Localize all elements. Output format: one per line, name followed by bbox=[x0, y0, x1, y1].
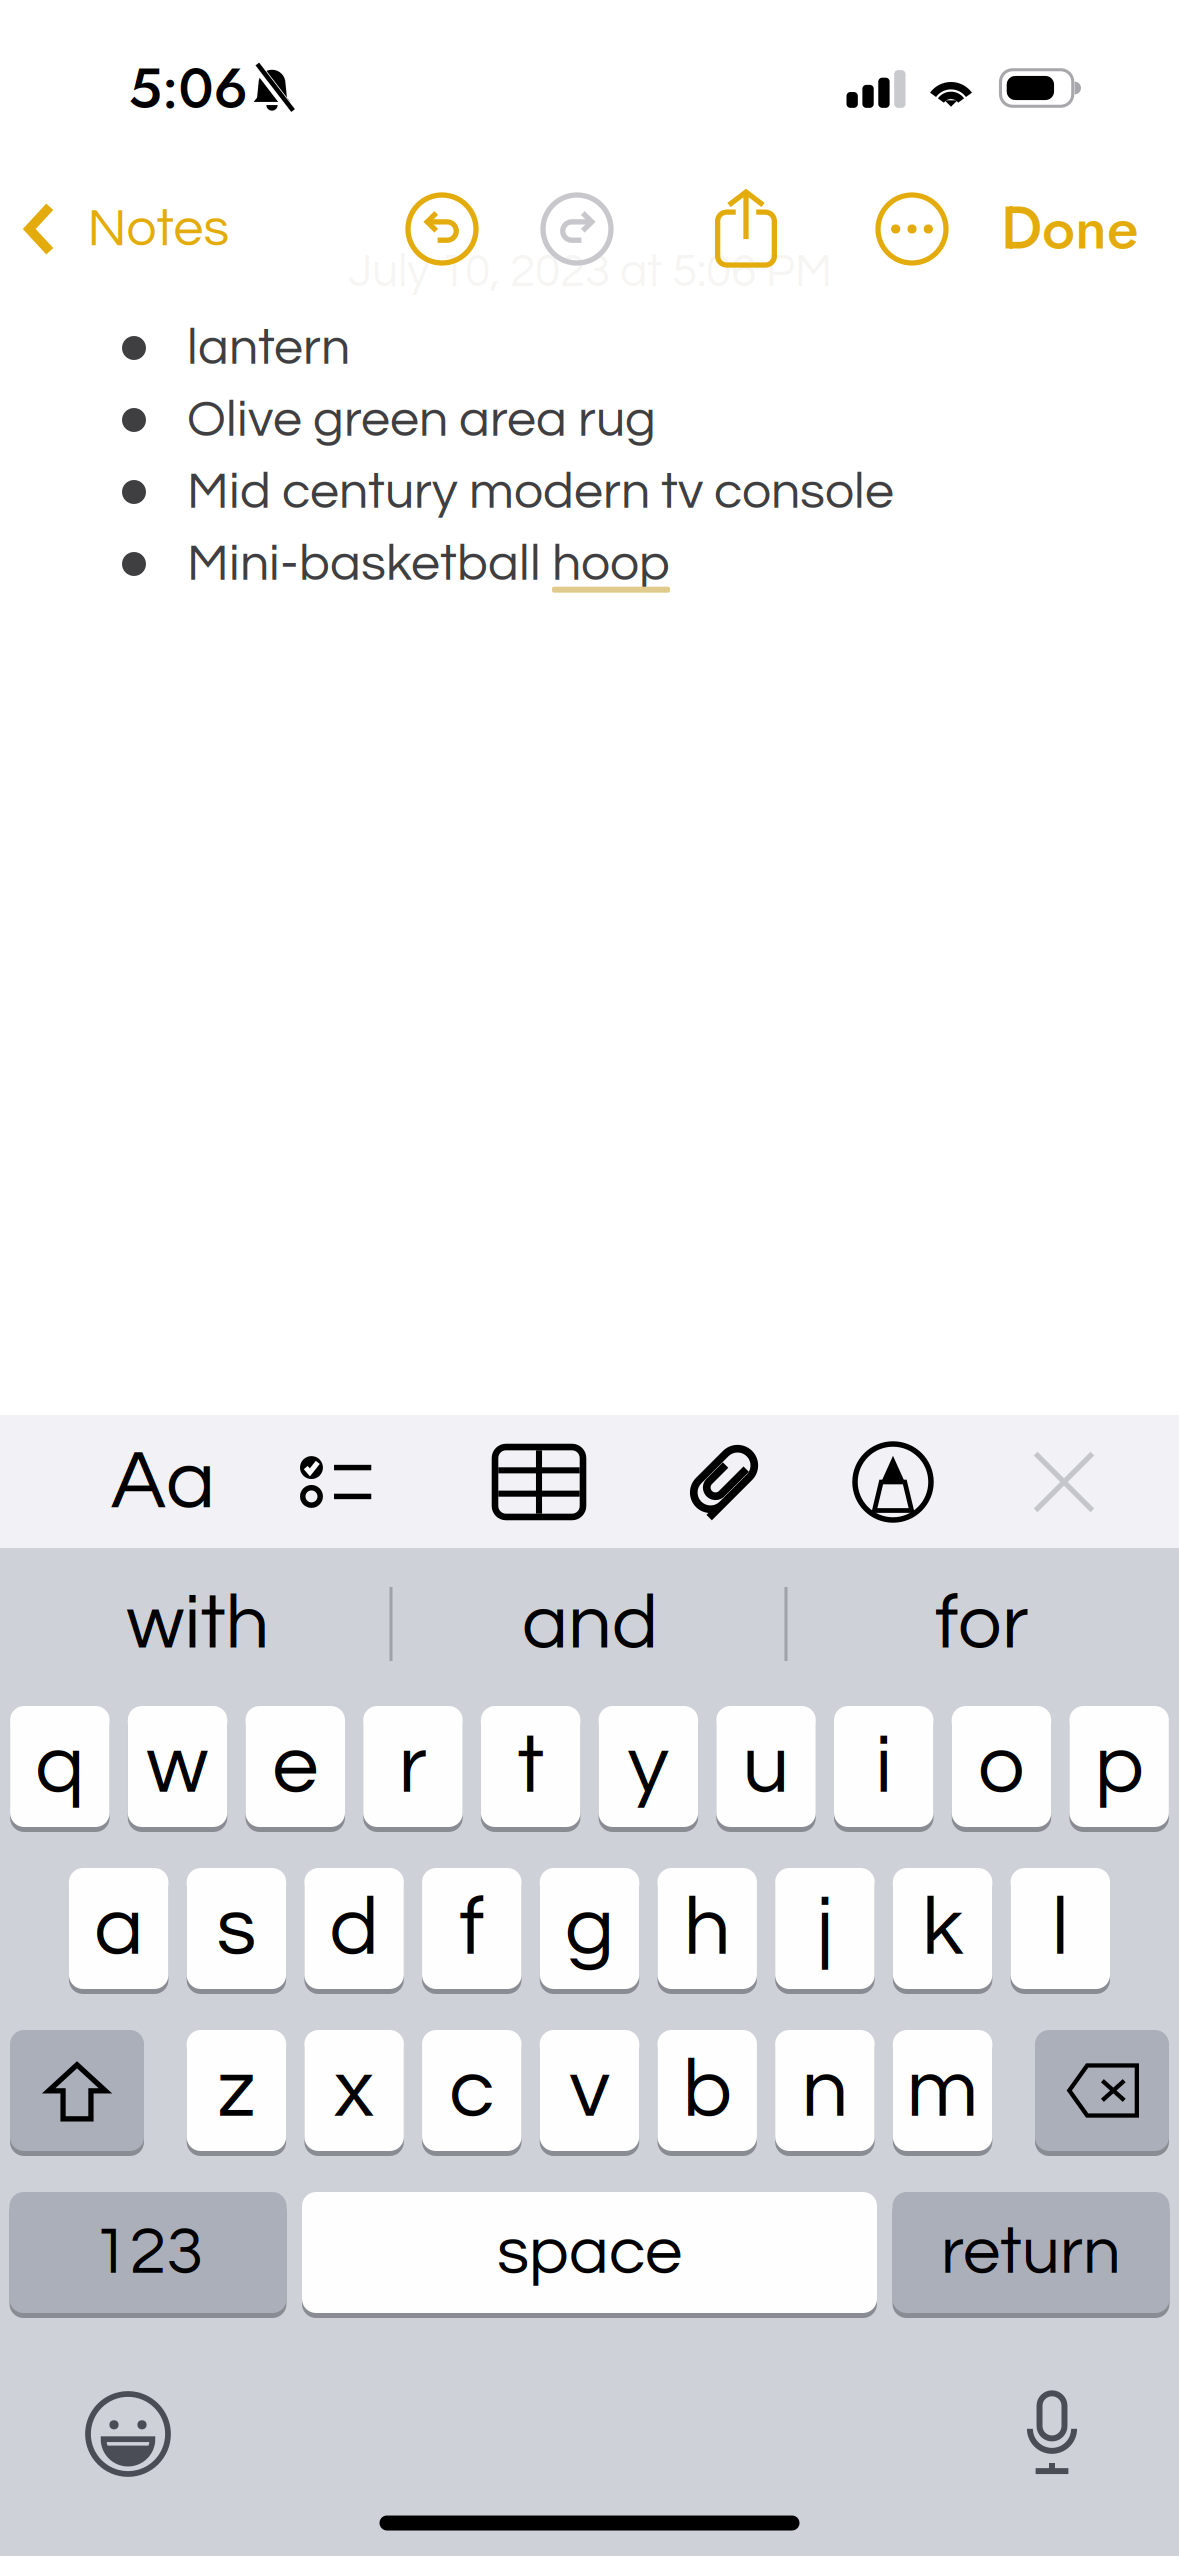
button[interactable]: Attach file bbox=[646, 1415, 796, 1548]
button[interactable]: z bbox=[187, 2025, 286, 2156]
staticText: lantern bbox=[187, 321, 350, 375]
staticText: hoop bbox=[552, 537, 670, 591]
button[interactable]: e bbox=[245, 1701, 345, 1832]
staticText: q bbox=[35, 1724, 84, 1809]
staticText: Mid century modern tv console bbox=[187, 465, 894, 519]
staticText: return bbox=[941, 2218, 1121, 2287]
staticText: k bbox=[922, 1886, 963, 1971]
staticText: Notes bbox=[87, 201, 229, 256]
staticText: 123 bbox=[92, 2218, 203, 2287]
staticText: and bbox=[522, 1584, 658, 1664]
staticText: e bbox=[272, 1724, 318, 1809]
button[interactable]: with bbox=[3, 1545, 393, 1702]
staticText: x bbox=[334, 2048, 374, 2133]
staticText: i bbox=[875, 1724, 892, 1809]
staticText: r bbox=[398, 1724, 427, 1809]
staticText: l bbox=[1052, 1886, 1069, 1971]
button[interactable]: Share bbox=[695, 168, 797, 288]
button[interactable]: d bbox=[304, 1863, 404, 1994]
button[interactable]: a bbox=[69, 1863, 168, 1994]
button[interactable]: Dictate bbox=[1002, 2368, 1102, 2496]
staticText: d bbox=[330, 1886, 379, 1971]
button[interactable]: Shift bbox=[10, 2025, 144, 2156]
button[interactable]: Notes bbox=[0, 175, 253, 282]
button[interactable]: b bbox=[657, 2025, 757, 2156]
button[interactable]: l bbox=[1011, 1863, 1110, 1994]
button[interactable]: Format bbox=[88, 1415, 238, 1548]
button[interactable]: s bbox=[187, 1863, 286, 1994]
staticText: f bbox=[459, 1886, 484, 1971]
staticText: w bbox=[147, 1724, 209, 1809]
staticText: c bbox=[449, 2048, 494, 2133]
button[interactable]: y bbox=[599, 1701, 698, 1832]
staticText: v bbox=[569, 2048, 609, 2133]
staticText: u bbox=[743, 1724, 790, 1809]
staticText: Mini-basketball bbox=[187, 537, 552, 591]
button[interactable]: c bbox=[422, 2025, 521, 2156]
staticText: Olive green area rug bbox=[187, 393, 656, 447]
staticText: o bbox=[978, 1724, 1025, 1809]
button[interactable]: return bbox=[892, 2187, 1169, 2318]
button[interactable]: k bbox=[893, 1863, 992, 1994]
button[interactable]: q bbox=[10, 1701, 110, 1832]
staticText: 5:06 bbox=[128, 47, 247, 128]
staticText: j bbox=[816, 1886, 833, 1971]
staticText: Aa bbox=[111, 1439, 215, 1524]
button[interactable]: h bbox=[657, 1863, 757, 1994]
staticText: n bbox=[801, 2048, 848, 2133]
staticText: y bbox=[628, 1724, 669, 1809]
button[interactable]: Redo bbox=[523, 175, 631, 283]
staticText: t bbox=[517, 1724, 544, 1809]
button[interactable]: i bbox=[834, 1701, 933, 1832]
button[interactable]: v bbox=[540, 2025, 639, 2156]
button[interactable]: and bbox=[395, 1545, 785, 1702]
button[interactable]: Close keyboard bbox=[989, 1415, 1139, 1548]
button[interactable]: space bbox=[302, 2187, 877, 2318]
button[interactable]: Delete bbox=[1035, 2025, 1169, 2156]
button[interactable]: f bbox=[422, 1863, 522, 1994]
staticText: s bbox=[216, 1886, 256, 1971]
button[interactable]: Done bbox=[977, 160, 1163, 296]
button[interactable]: m bbox=[893, 2025, 992, 2156]
staticText: g bbox=[565, 1886, 614, 1971]
button[interactable]: Emoji bbox=[64, 2370, 192, 2498]
staticText: h bbox=[684, 1886, 731, 1971]
staticText: for bbox=[935, 1584, 1029, 1664]
staticText: with bbox=[126, 1584, 269, 1664]
staticText: Done bbox=[1001, 186, 1139, 270]
button[interactable]: 123 bbox=[9, 2187, 286, 2318]
button[interactable]: o bbox=[952, 1701, 1051, 1832]
staticText: p bbox=[1095, 1724, 1144, 1809]
button[interactable]: Checklist bbox=[262, 1415, 412, 1548]
staticText: m bbox=[907, 2048, 979, 2133]
staticText: z bbox=[217, 2048, 255, 2133]
staticText: July 10, 2023 at 5:06 PM bbox=[348, 248, 832, 296]
button[interactable]: g bbox=[540, 1863, 639, 1994]
button[interactable]: Undo bbox=[388, 175, 496, 283]
button[interactable]: for bbox=[787, 1545, 1177, 1702]
button[interactable]: n bbox=[775, 2025, 875, 2156]
button[interactable]: j bbox=[775, 1863, 875, 1994]
button[interactable]: Table bbox=[464, 1415, 614, 1548]
button[interactable]: Markup bbox=[818, 1415, 968, 1548]
button[interactable]: More options bbox=[858, 175, 966, 283]
button[interactable]: x bbox=[304, 2025, 404, 2156]
staticText: space bbox=[497, 2218, 682, 2287]
button[interactable]: r bbox=[363, 1701, 463, 1832]
staticText: a bbox=[94, 1886, 143, 1971]
button[interactable]: u bbox=[716, 1701, 816, 1832]
button[interactable]: t bbox=[481, 1701, 580, 1832]
button[interactable]: w bbox=[128, 1701, 227, 1832]
button[interactable]: p bbox=[1069, 1701, 1169, 1832]
staticText: b bbox=[683, 2048, 732, 2133]
